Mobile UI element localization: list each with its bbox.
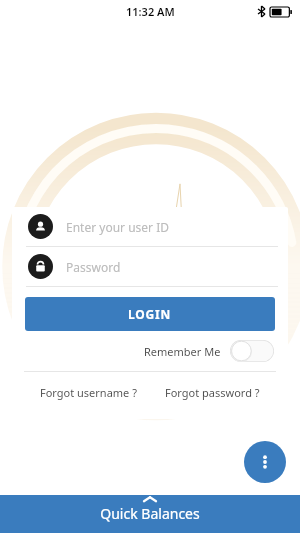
staticText: Forgot password ? (165, 385, 260, 400)
staticText: Quick Balances (100, 504, 200, 523)
staticText: 11:32 AM (126, 4, 175, 19)
staticText: LOGIN (128, 306, 172, 322)
button[interactable]: Enter your user ID (12, 207, 288, 246)
button[interactable]: Quick Balances (0, 495, 300, 533)
button[interactable]: Forgot username ? (34, 382, 143, 403)
button[interactable]: Password (12, 247, 288, 286)
staticText: Remember Me (144, 344, 221, 359)
staticText: Password (66, 259, 121, 275)
button[interactable]: Remember Me toggle (230, 340, 274, 362)
button[interactable]: Forgot password ? (159, 382, 266, 403)
staticText: Forgot username ? (40, 385, 137, 400)
button[interactable]: Remember Me (12, 340, 274, 362)
button[interactable]: More options (244, 441, 286, 483)
button[interactable]: LOGIN (25, 297, 275, 331)
staticText: Enter your user ID (66, 219, 169, 235)
